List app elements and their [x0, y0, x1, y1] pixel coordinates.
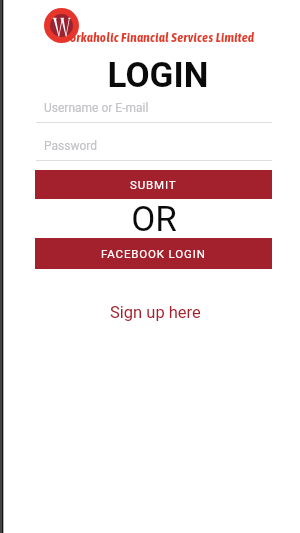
staticText: SUBMIT: [130, 178, 177, 191]
other: Workaholic Financial Services logo: [44, 8, 79, 43]
staticText: Username or E-mail: [44, 101, 149, 115]
button[interactable]: Sign up here: [106, 299, 205, 326]
button[interactable]: FACEBOOK LOGIN: [35, 238, 272, 269]
staticText: OR: [4, 199, 300, 240]
staticText: FACEBOOK LOGIN: [101, 247, 206, 260]
button[interactable]: SUBMIT: [35, 170, 272, 199]
staticText: Password: [44, 139, 98, 153]
staticText: LOGIN: [8, 55, 300, 96]
staticText: orkaholic Financial Services Limited: [70, 30, 255, 45]
